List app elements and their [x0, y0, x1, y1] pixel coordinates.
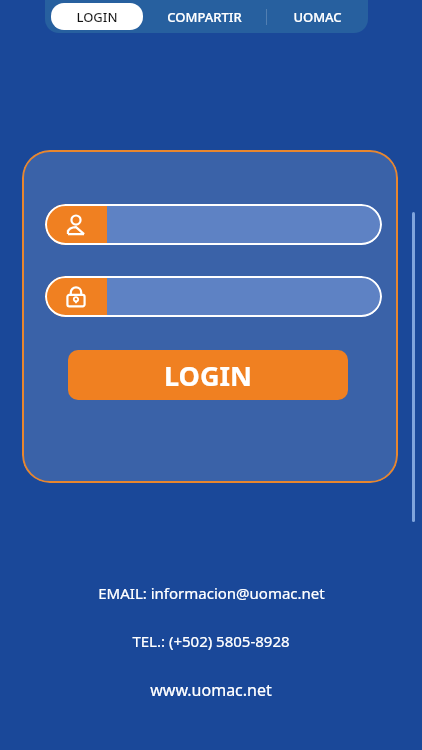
staticText: EMAIL: informacion@uomac.net	[98, 583, 325, 603]
staticText: www.uomac.net	[150, 679, 272, 701]
button[interactable]: Contraseña	[45, 276, 382, 317]
button[interactable]: UOMAC	[267, 0, 368, 33]
button[interactable]: COMPARTIR	[143, 0, 266, 33]
staticText: LOGIN	[76, 8, 118, 26]
staticText: TEL.: (+502) 5805-8928	[132, 631, 290, 651]
staticText: LOGIN	[164, 357, 252, 394]
button[interactable]: Usuario	[45, 204, 382, 245]
button[interactable]: LOGIN	[51, 3, 143, 30]
staticText: COMPARTIR	[167, 8, 242, 26]
button[interactable]: LOGIN	[68, 350, 348, 400]
staticText: UOMAC	[293, 8, 342, 26]
